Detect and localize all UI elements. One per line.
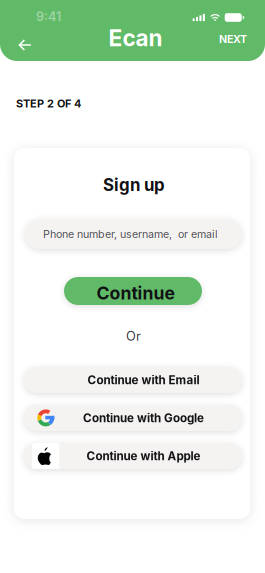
button[interactable]: Back (9, 31, 41, 59)
staticText: STEP 2 OF 4 (16, 97, 81, 110)
button[interactable]: Continue with Google (24, 405, 242, 431)
staticText: 9:41 (36, 9, 61, 24)
staticText: Ecan (108, 24, 162, 52)
button[interactable]: NEXT (216, 28, 250, 50)
staticText: NEXT (219, 32, 247, 45)
button[interactable]: Continue (64, 277, 202, 305)
staticText: Phone number, username, or email (43, 227, 218, 240)
staticText: Continue with Apple (86, 449, 200, 463)
staticText: Continue with Google (83, 411, 204, 425)
staticText: Or (126, 328, 141, 344)
button[interactable]: Continue with Apple (24, 443, 242, 469)
staticText: Continue with Email (87, 373, 199, 387)
staticText: Continue (96, 282, 174, 304)
staticText: Sign up (103, 175, 165, 195)
button[interactable]: Continue with Email (24, 367, 242, 393)
